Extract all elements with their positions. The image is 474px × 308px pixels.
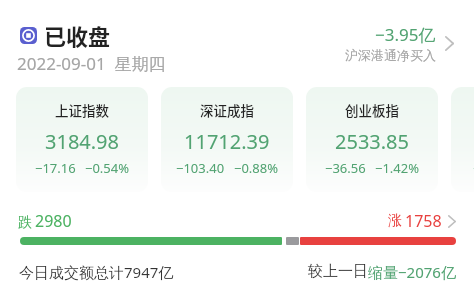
other: More: [448, 215, 456, 228]
staticText: 11712.39: [184, 128, 270, 155]
staticText: 上证指数: [55, 100, 109, 120]
staticText: −0.88%: [234, 159, 279, 177]
staticText: 1758: [405, 210, 442, 232]
staticText: 今日成交额总计7947亿: [19, 262, 174, 282]
staticText: 缩量−2076亿: [368, 262, 456, 282]
staticText: −0.54%: [85, 159, 130, 177]
button[interactable]: 涨: [388, 210, 456, 232]
staticText: 2980: [35, 210, 72, 232]
staticText: 2022-09-01 星期四: [17, 52, 166, 75]
button[interactable]: 较上一日: [308, 262, 456, 282]
staticText: 深证成指: [200, 100, 254, 120]
button[interactable]: 创业板指: [306, 87, 438, 192]
button[interactable]: −3.95亿: [345, 23, 454, 63]
staticText: −17.16: [35, 159, 76, 177]
staticText: 已收盘: [44, 19, 111, 51]
staticText: 涨: [388, 212, 402, 230]
other: More: [445, 36, 454, 51]
staticText: −103.40: [176, 159, 225, 177]
staticText: 3184.98: [45, 128, 119, 155]
staticText: 沪深港通净买入: [345, 47, 436, 63]
other: Market status: [20, 27, 37, 44]
staticText: −9.82: [473, 159, 474, 177]
button[interactable]: 科创50: [451, 87, 474, 192]
staticText: 跌: [18, 214, 32, 232]
staticText: 2533.85: [335, 128, 409, 155]
staticText: 较上一日: [308, 262, 368, 281]
staticText: 创业板指: [345, 100, 399, 120]
staticText: −3.95亿: [375, 23, 436, 46]
button[interactable]: 上证指数: [16, 87, 148, 192]
staticText: −36.56: [325, 159, 366, 177]
button[interactable]: 深证成指: [161, 87, 293, 192]
staticText: −1.42%: [375, 159, 420, 177]
button[interactable]: 跌: [18, 210, 72, 232]
